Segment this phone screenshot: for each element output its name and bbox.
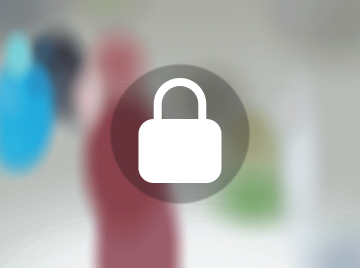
button[interactable]: Locked	[90, 44, 270, 224]
